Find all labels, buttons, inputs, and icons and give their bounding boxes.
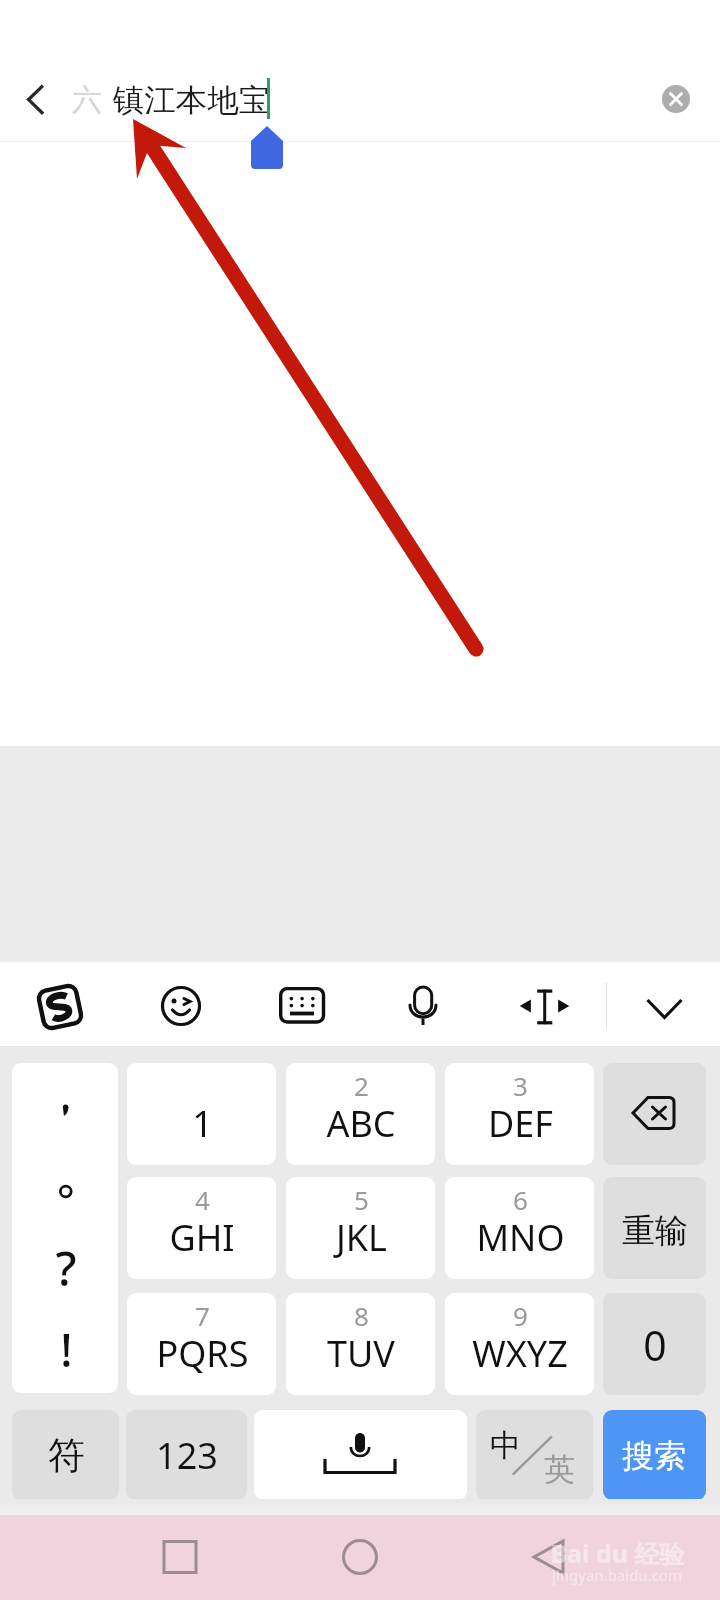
- staticText: 0: [643, 1317, 667, 1373]
- button[interactable]: 2 ABC: [286, 1063, 435, 1165]
- button[interactable]: 中 / 英: [476, 1410, 593, 1500]
- staticText: PQRS: [156, 1329, 249, 1378]
- button[interactable]: Punctuation: [12, 1063, 118, 1393]
- button[interactable]: 3 DEF: [445, 1063, 594, 1165]
- button[interactable]: 123: [126, 1410, 247, 1500]
- button[interactable]: 7 PQRS: [127, 1293, 276, 1395]
- button[interactable]: 符号: [12, 1410, 119, 1500]
- staticText: GHI: [169, 1213, 235, 1262]
- button[interactable]: Back: [519, 1527, 579, 1587]
- button[interactable]: Emoji: [151, 976, 211, 1036]
- button[interactable]: Backspace: [603, 1063, 706, 1165]
- button[interactable]: Space: [254, 1410, 467, 1500]
- button[interactable]: 5 JKL: [286, 1177, 435, 1279]
- staticText: 六: [72, 81, 102, 119]
- staticText: Bai du 经验: [550, 1536, 685, 1570]
- button[interactable]: 1: [127, 1063, 276, 1165]
- button[interactable]: 镇江本地宝: [113, 72, 275, 130]
- staticText: 4: [195, 1182, 210, 1217]
- button[interactable]: 6 MNO: [445, 1177, 594, 1279]
- staticText: WXYZ: [472, 1329, 568, 1378]
- staticText: 2: [354, 1068, 369, 1103]
- button[interactable]: Recent apps: [150, 1527, 210, 1587]
- button[interactable]: 9 WXYZ: [445, 1293, 594, 1395]
- staticText: 1: [192, 1099, 213, 1148]
- button[interactable]: 搜索: [603, 1410, 706, 1500]
- staticText: ABC: [326, 1099, 396, 1148]
- staticText: 镇江本地宝: [113, 81, 270, 121]
- staticText: 重输: [622, 1210, 688, 1252]
- staticText: 123: [156, 1431, 218, 1480]
- staticText: 9: [513, 1298, 528, 1333]
- staticText: 7: [195, 1298, 210, 1333]
- staticText: MNO: [476, 1213, 565, 1262]
- staticText: ?: [55, 1236, 77, 1300]
- staticText: DEF: [488, 1099, 553, 1148]
- staticText: 5: [354, 1182, 369, 1217]
- staticText: 符: [48, 1432, 85, 1479]
- staticText: 6: [513, 1182, 528, 1217]
- button[interactable]: Clear text: [660, 83, 692, 115]
- button[interactable]: Sogou input method: [30, 977, 90, 1037]
- button[interactable]: 0: [603, 1293, 706, 1395]
- staticText: TUV: [327, 1329, 395, 1378]
- staticText: JKL: [336, 1213, 387, 1262]
- staticText: jingyan.baidu.com: [552, 1565, 682, 1585]
- button[interactable]: 重输: [603, 1177, 706, 1279]
- button[interactable]: Move cursor: [515, 982, 575, 1030]
- button[interactable]: 8 TUV: [286, 1293, 435, 1395]
- button[interactable]: Home: [330, 1527, 390, 1587]
- staticText: !: [60, 1319, 73, 1380]
- staticText: 搜索: [622, 1436, 686, 1476]
- button[interactable]: Voice input: [393, 976, 453, 1036]
- button[interactable]: Back: [6, 71, 64, 129]
- staticText: 中: [490, 1426, 521, 1465]
- button[interactable]: Switch keyboard: [272, 976, 332, 1036]
- staticText: 3: [513, 1068, 528, 1103]
- button[interactable]: Hide keyboard: [635, 985, 695, 1033]
- staticText: 8: [354, 1298, 369, 1333]
- staticText: 英: [544, 1450, 575, 1489]
- button[interactable]: 4 GHI: [127, 1177, 276, 1279]
